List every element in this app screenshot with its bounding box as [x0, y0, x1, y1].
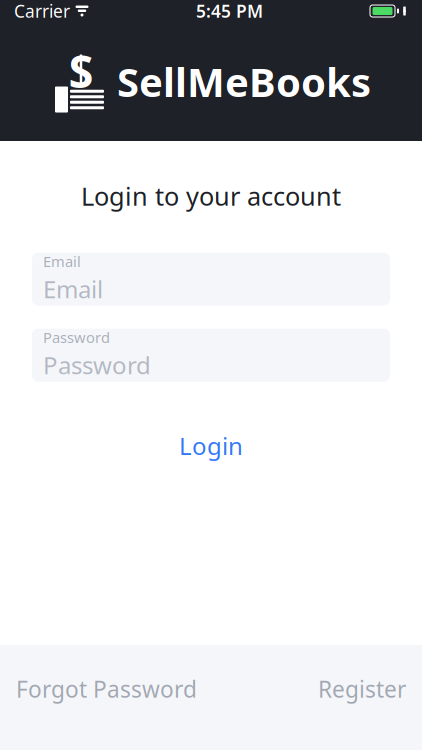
staticText: Password — [43, 349, 151, 381]
button[interactable]: Forgot Password — [16, 662, 197, 716]
button[interactable]: Email — [32, 253, 390, 306]
staticText: Login — [179, 430, 243, 462]
staticText: Carrier — [14, 0, 70, 22]
button[interactable]: Login — [32, 426, 390, 466]
staticText: 5:45 PM — [196, 0, 263, 22]
staticText: Forgot Password — [16, 674, 197, 704]
staticText: SellMeBooks — [117, 55, 371, 108]
staticText: Email — [43, 273, 103, 305]
staticText: Register — [318, 674, 406, 704]
staticText: Email — [43, 251, 81, 271]
staticText: Login to your account — [81, 179, 341, 213]
staticText: S — [68, 40, 93, 101]
staticText: Password — [43, 327, 110, 347]
button[interactable]: Register — [318, 662, 406, 716]
button[interactable]: Password — [32, 329, 390, 382]
